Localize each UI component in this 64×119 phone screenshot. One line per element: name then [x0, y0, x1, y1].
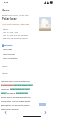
- staticText: add links, fix grammar, reword: [3, 37, 28, 39]
- button[interactable]: Next edit: [42, 109, 49, 116]
- staticText: bear species, as well as the largest: [1, 104, 30, 106]
- staticText: extant land carnivore.: [1, 108, 20, 110]
- staticText: land masses. It is the largest extant: [1, 100, 31, 102]
- staticText: Nov 15, 2023 8:45 am, updated: [3, 34, 28, 36]
- button[interactable]: Previous edit: [2, 109, 9, 116]
- staticText: sing the Arctic: [16, 92, 28, 94]
- staticText: range lies: [1, 88, 10, 90]
- button[interactable]: Tomboy: [2, 43, 13, 47]
- button[interactable]: Back: [0, 7, 64, 13]
- button[interactable]: Polar bear photo: [39, 17, 51, 31]
- staticText: Edit by: [3, 28, 9, 30]
- staticText: Line 7:: [2, 65, 8, 67]
- staticText: User contributio: [3, 57, 18, 59]
- staticText: Tomboy: [4, 44, 13, 47]
- staticText: encompas: [7, 92, 16, 94]
- staticText: Polar bear: [2, 17, 17, 21]
- staticText: Revision as of 08:45, 15 Nov 2023: [2, 14, 29, 16]
- staticText: largely within the Arctic: [10, 88, 30, 90]
- staticText: a hypercarnivor: [1, 84, 14, 86]
- button[interactable]: User page: [2, 48, 13, 52]
- staticText: User page: [3, 48, 12, 50]
- staticText: Nov 15, 2023 · 8:45: [3, 31, 19, 33]
- staticText: The polar bear (Ursus maritimus) is: [1, 80, 30, 82]
- staticText: User talk pag: [3, 53, 15, 55]
- staticText: Ocean and its surrounding seas and: [1, 96, 31, 98]
- staticText: Back: [4, 9, 10, 12]
- staticText: ous bear whose native: [14, 84, 33, 86]
- staticText: 8:45: [4, 1, 9, 4]
- button[interactable]: User contributio: [2, 57, 18, 61]
- staticText: Circle,: [1, 92, 7, 94]
- button[interactable]: User talk pag: [2, 53, 15, 57]
- staticText: Line 8:: [2, 72, 8, 74]
- staticText: 7,501 bytes removed, 3 hours ago: [2, 23, 30, 25]
